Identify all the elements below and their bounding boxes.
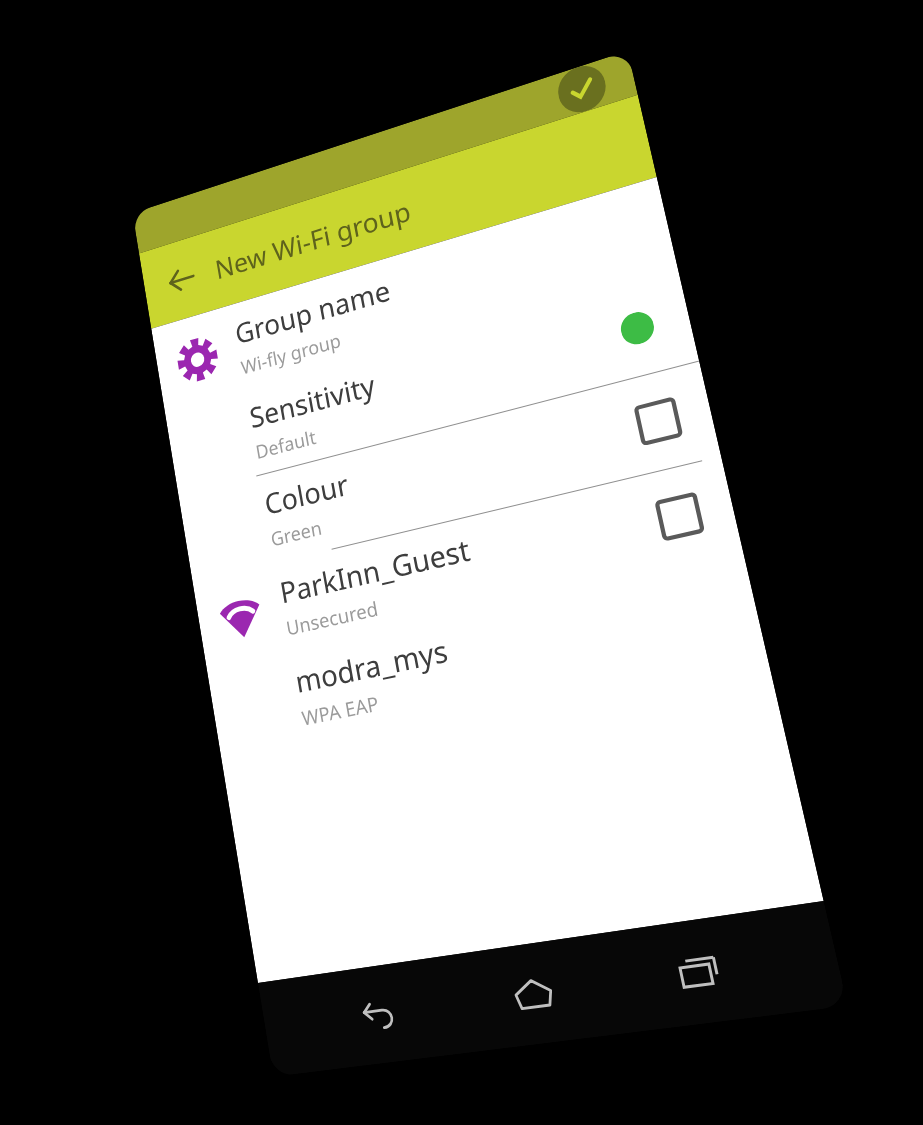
button[interactable]: Colour bbox=[179, 362, 721, 582]
button[interactable]: modra_mys bbox=[207, 553, 766, 759]
button[interactable]: Recents bbox=[652, 926, 748, 1016]
staticText: Colour bbox=[262, 464, 351, 523]
staticText: New Wi-Fi group bbox=[212, 192, 414, 287]
staticText: Unsecured bbox=[284, 595, 381, 641]
staticText: Wi-fly group bbox=[239, 327, 343, 380]
button[interactable]: Group name bbox=[151, 179, 678, 412]
button[interactable]: Back bbox=[338, 972, 420, 1056]
staticText: Sensitivity bbox=[247, 365, 378, 437]
button[interactable]: ParkInn_Guest bbox=[193, 457, 743, 670]
staticText: Default bbox=[254, 424, 318, 465]
button[interactable]: Sensitivity bbox=[165, 269, 699, 496]
staticText: Green bbox=[269, 514, 324, 552]
staticText: ParkInn_Guest bbox=[277, 529, 474, 612]
button[interactable]: Home bbox=[490, 950, 578, 1037]
staticText: WPA EAP bbox=[300, 690, 381, 732]
staticText: modra_mys bbox=[292, 630, 451, 702]
button[interactable]: Save group bbox=[554, 60, 610, 118]
staticText: Group name bbox=[232, 271, 393, 352]
button[interactable]: Back bbox=[154, 247, 210, 312]
